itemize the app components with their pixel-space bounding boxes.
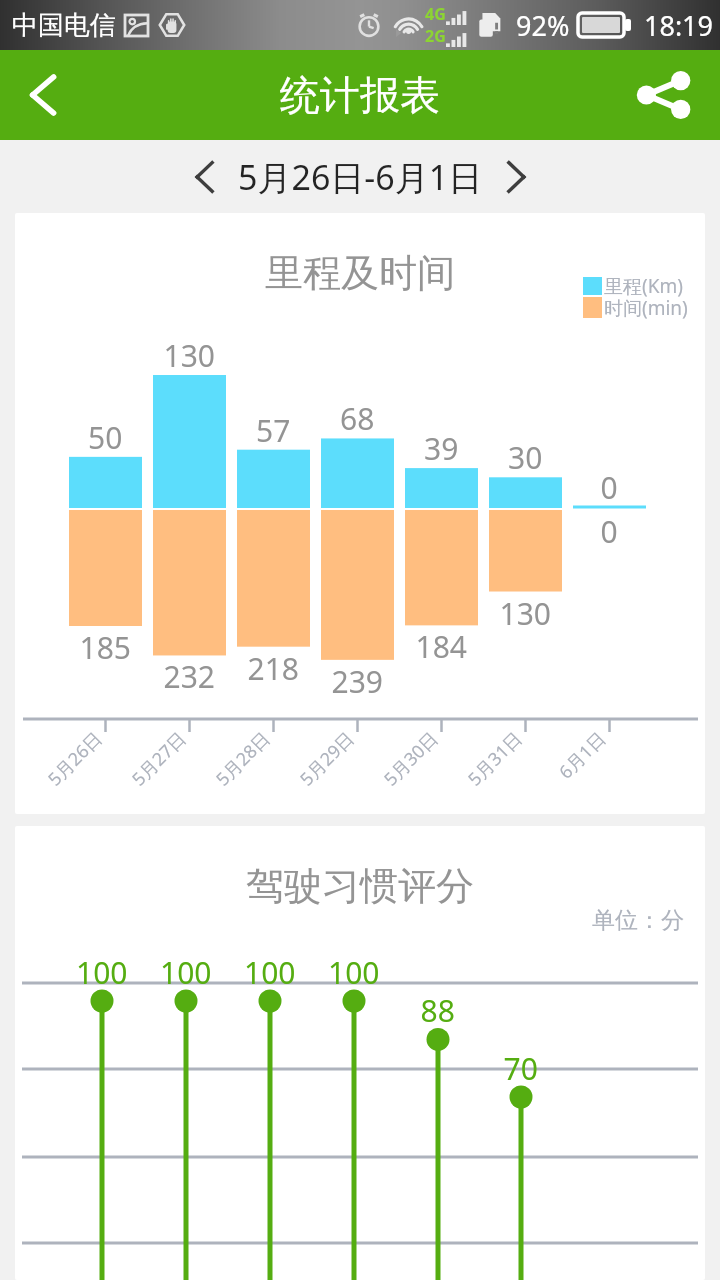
staticText: 18:19	[644, 7, 714, 44]
staticText: 统计报表	[280, 70, 440, 120]
staticText: 中国电信	[12, 9, 116, 42]
staticText: 5月26日-6月1日	[238, 154, 483, 200]
staticText: 单位：分	[592, 906, 684, 935]
staticText: 92%	[516, 7, 570, 44]
button[interactable]: Share	[634, 50, 689, 140]
staticText: 2G	[425, 25, 446, 47]
button[interactable]: Previous week	[172, 145, 238, 209]
staticText: 时间(min)	[604, 295, 688, 321]
button[interactable]: Next week	[483, 145, 549, 209]
button[interactable]: Back	[0, 50, 88, 140]
staticText: 驾驶习惯评分	[246, 862, 474, 910]
staticText: 4G	[425, 3, 446, 25]
staticText: 里程(Km)	[604, 273, 683, 299]
staticText: 里程及时间	[265, 249, 455, 297]
